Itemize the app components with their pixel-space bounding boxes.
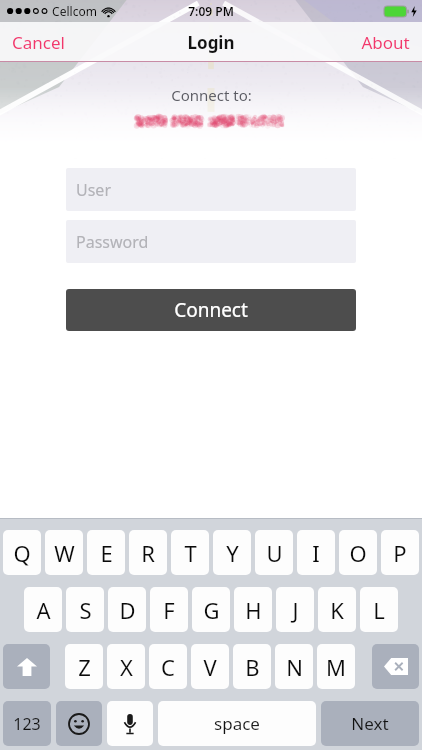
staticText: R [141, 538, 155, 568]
staticText: Next [351, 712, 389, 735]
staticText: N [286, 652, 303, 682]
staticText: D [119, 595, 136, 625]
button[interactable]: 123 [3, 701, 51, 746]
staticText: 7:09 PM [188, 3, 234, 19]
button[interactable]: P [381, 530, 419, 575]
button[interactable]: Shift [3, 644, 50, 689]
button[interactable]: S [66, 587, 104, 632]
staticText: U [266, 538, 283, 568]
staticText: Password [76, 231, 149, 253]
staticText: W [54, 538, 75, 568]
button[interactable]: N [275, 644, 313, 689]
staticText: G [203, 595, 220, 625]
staticText: L [373, 595, 385, 625]
button[interactable]: H [234, 587, 272, 632]
button[interactable]: E [87, 530, 125, 575]
button[interactable]: Dictation [107, 701, 153, 746]
staticText: E [100, 538, 113, 568]
button[interactable]: Backspace [372, 644, 419, 689]
button[interactable]: M [317, 644, 355, 689]
staticText: S [79, 595, 92, 625]
staticText: A [36, 595, 51, 625]
button[interactable]: C [149, 644, 187, 689]
button[interactable]: K [318, 587, 356, 632]
button[interactable]: I [297, 530, 335, 575]
button[interactable]: User [66, 168, 356, 211]
button[interactable]: Y [213, 530, 251, 575]
staticText: V [203, 652, 217, 682]
staticText: B [245, 652, 260, 682]
staticText: Y [226, 538, 239, 568]
button[interactable]: Emoji [56, 701, 102, 746]
button[interactable]: V [191, 644, 229, 689]
button[interactable]: D [108, 587, 146, 632]
staticText: space [214, 712, 260, 735]
button[interactable]: Cancel [0, 25, 77, 60]
staticText: C [161, 652, 175, 682]
button[interactable]: G [192, 587, 230, 632]
button[interactable]: Next [321, 701, 419, 746]
staticText: X [120, 652, 133, 682]
button[interactable]: L [360, 587, 398, 632]
staticText: Cancel [12, 31, 65, 54]
staticText: M [326, 652, 346, 682]
button[interactable]: Connect [66, 289, 356, 331]
staticText: T [184, 538, 197, 568]
staticText: Cellcom [52, 3, 97, 19]
staticText: 123 [13, 713, 41, 735]
button[interactable]: T [171, 530, 209, 575]
button[interactable]: X [107, 644, 145, 689]
button[interactable]: W [45, 530, 83, 575]
button[interactable]: U [255, 530, 293, 575]
button[interactable]: O [339, 530, 377, 575]
staticText: Z [78, 652, 91, 682]
button[interactable]: Z [65, 644, 103, 689]
button[interactable]: A [24, 587, 62, 632]
staticText: K [330, 595, 344, 625]
button[interactable]: J [276, 587, 314, 632]
button[interactable]: space [158, 701, 316, 746]
staticText: I [312, 538, 320, 568]
button[interactable]: About [349, 25, 422, 60]
button[interactable]: B [233, 644, 271, 689]
staticText: Connect [174, 297, 248, 323]
staticText: F [163, 595, 175, 625]
button[interactable]: Password [66, 220, 356, 263]
button[interactable]: F [150, 587, 188, 632]
staticText: O [349, 538, 367, 568]
staticText: About [361, 31, 410, 54]
staticText: User [76, 179, 111, 201]
staticText: Q [13, 538, 31, 568]
staticText: Login [187, 31, 235, 54]
staticText: H [245, 595, 262, 625]
button[interactable]: R [129, 530, 167, 575]
staticText: Connect to: [171, 85, 252, 105]
staticText: P [393, 538, 407, 568]
staticText: J [292, 595, 299, 625]
button[interactable]: Q [3, 530, 41, 575]
